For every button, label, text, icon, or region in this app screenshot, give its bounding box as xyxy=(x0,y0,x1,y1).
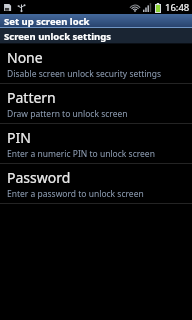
button[interactable]: Password xyxy=(0,164,192,203)
staticText: Password xyxy=(7,168,71,187)
button[interactable]: Pattern xyxy=(0,84,192,123)
staticText: Pattern xyxy=(7,88,56,107)
staticText: PIN xyxy=(7,128,31,147)
staticText: 16:48 xyxy=(165,1,190,14)
staticText: None xyxy=(7,48,43,67)
staticText: Draw pattern to unlock screen xyxy=(7,108,128,120)
staticText: Enter a numeric PIN to unlock screen xyxy=(7,148,155,160)
staticText: Screen unlock settings xyxy=(4,30,112,43)
button[interactable]: None xyxy=(0,44,192,83)
staticText: Disable screen unlock security settings xyxy=(7,68,162,80)
button[interactable]: PIN xyxy=(0,124,192,163)
staticText: Enter a password to unlock screen xyxy=(7,188,144,200)
staticText: Set up screen lock xyxy=(4,15,90,28)
